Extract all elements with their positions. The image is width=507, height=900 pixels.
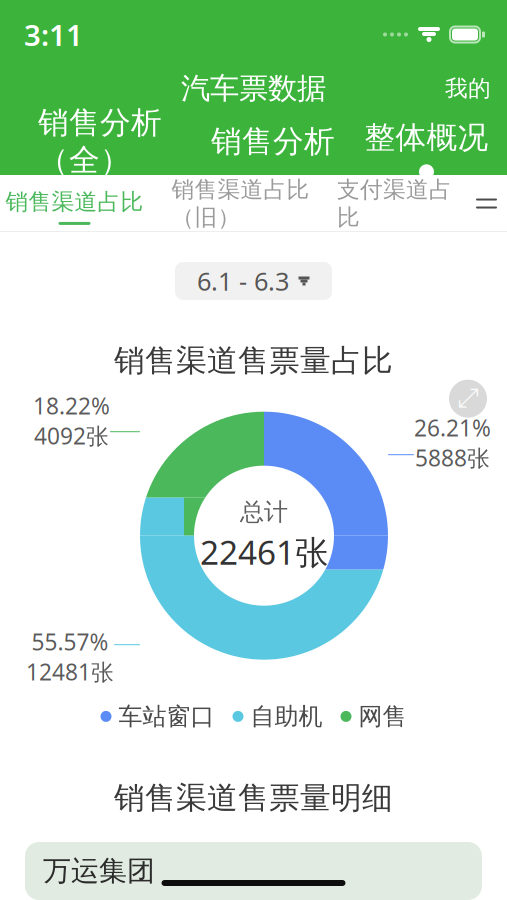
staticText: 22461张 (200, 530, 328, 574)
staticText: 网售 (358, 702, 406, 731)
staticText: 销售渠道占比（旧） (171, 176, 309, 231)
staticText: 6.1 - 6.3 (197, 264, 289, 298)
staticText: 26.21% (414, 413, 491, 443)
staticText: 12481张 (26, 657, 114, 687)
staticText: 18.22% (33, 391, 110, 421)
button[interactable]: 销售渠道占比（旧） (149, 175, 331, 232)
button[interactable]: 6.1 - 6.3 (175, 262, 332, 300)
staticText: 万运集团 (43, 854, 155, 888)
staticText: 55.57% (31, 627, 108, 657)
staticText: 整体概况 (364, 119, 488, 156)
staticText: 销售分析（全） (38, 104, 162, 179)
button[interactable]: 我的 (429, 65, 507, 112)
staticText: 销售渠道占比 (5, 188, 143, 216)
staticText: 总计 (240, 497, 288, 527)
staticText: 销售渠道售票量占比 (114, 342, 393, 380)
button[interactable]: 销售分析 (200, 113, 346, 169)
button[interactable]: 销售渠道占比 (0, 175, 149, 232)
button[interactable]: 支付渠道占比 (331, 175, 457, 232)
staticText: ⤢ (457, 386, 478, 412)
staticText: 销售渠道售票量明细 (114, 779, 393, 817)
staticText: 支付渠道占比 (337, 176, 452, 231)
staticText: 汽车票数据 (181, 70, 326, 106)
staticText: 车站窗口 (118, 702, 214, 731)
staticText: 自助机 (250, 702, 322, 731)
staticText: 5888张 (415, 443, 490, 473)
staticText: 3:11 (24, 15, 83, 54)
staticText: 4092张 (34, 421, 109, 451)
staticText: 销售分析 (211, 123, 335, 160)
button[interactable]: 全屏 (449, 380, 487, 418)
button[interactable]: 整体概况 (346, 113, 507, 169)
staticText: 我的 (445, 75, 491, 102)
button[interactable]: 销售分析（全） (0, 113, 200, 169)
button[interactable]: 更多标签 (465, 175, 507, 232)
